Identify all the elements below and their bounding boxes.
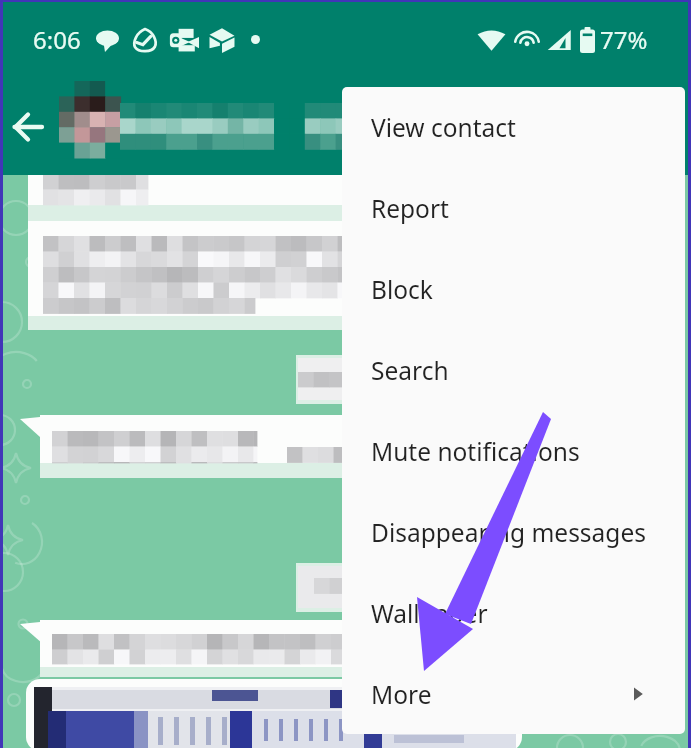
- staticText: Report: [371, 192, 449, 225]
- button[interactable]: Mute notifications: [342, 411, 685, 492]
- staticText: 77%: [600, 23, 648, 56]
- button[interactable]: Contact avatar: [59, 81, 121, 159]
- button[interactable]: More: [342, 654, 685, 734]
- button[interactable]: [120, 103, 346, 150]
- staticText: Mute notifications: [371, 435, 580, 468]
- staticText: Search: [371, 354, 449, 387]
- button[interactable]: Back: [0, 99, 56, 155]
- button[interactable]: Disappearing messages: [342, 492, 685, 573]
- button[interactable]: Block: [342, 249, 685, 330]
- button[interactable]: Wallpaper: [342, 573, 685, 654]
- button[interactable]: Report: [342, 168, 685, 249]
- staticText: Disappearing messages: [371, 516, 646, 549]
- staticText: Block: [371, 273, 433, 306]
- staticText: 6:06: [33, 23, 81, 56]
- button[interactable]: Search: [342, 330, 685, 411]
- button[interactable]: View contact: [342, 87, 685, 168]
- staticText: More: [371, 678, 432, 711]
- staticText: View contact: [371, 111, 516, 144]
- staticText: Wallpaper: [371, 597, 488, 630]
